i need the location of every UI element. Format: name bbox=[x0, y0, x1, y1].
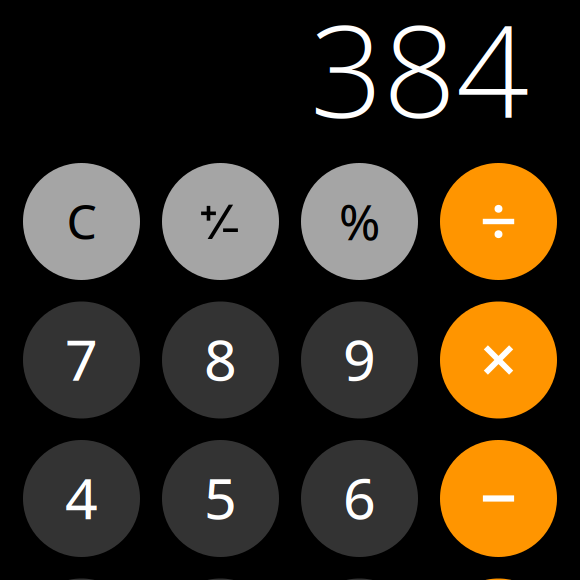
staticText: 7 bbox=[65, 319, 98, 398]
staticText: 5 bbox=[204, 458, 237, 536]
button[interactable]: 1 bbox=[23, 578, 140, 580]
button[interactable]: 6 bbox=[301, 440, 418, 557]
button[interactable]: Plus minus bbox=[162, 163, 279, 280]
button[interactable]: 5 bbox=[162, 440, 279, 557]
button[interactable]: 9 bbox=[301, 301, 418, 418]
button[interactable]: C bbox=[23, 163, 140, 280]
staticText: 4 bbox=[65, 458, 98, 536]
button[interactable]: Multiply bbox=[440, 301, 557, 418]
staticText: 8 bbox=[204, 319, 237, 398]
button[interactable]: 8 bbox=[162, 301, 279, 418]
button[interactable]: 4 bbox=[23, 440, 140, 557]
button[interactable]: 7 bbox=[23, 301, 140, 418]
button[interactable]: Plus bbox=[440, 578, 557, 580]
button[interactable]: Divide bbox=[440, 163, 557, 280]
button[interactable]: 3 bbox=[301, 578, 418, 580]
staticText: % bbox=[339, 187, 380, 255]
staticText: 9 bbox=[343, 319, 376, 398]
staticText: 6 bbox=[343, 458, 376, 536]
button[interactable]: % bbox=[301, 163, 418, 280]
button[interactable]: 2 bbox=[162, 578, 279, 580]
button[interactable]: Minus bbox=[440, 440, 557, 557]
staticText: 384 bbox=[310, 0, 529, 155]
staticText: C bbox=[66, 188, 96, 254]
